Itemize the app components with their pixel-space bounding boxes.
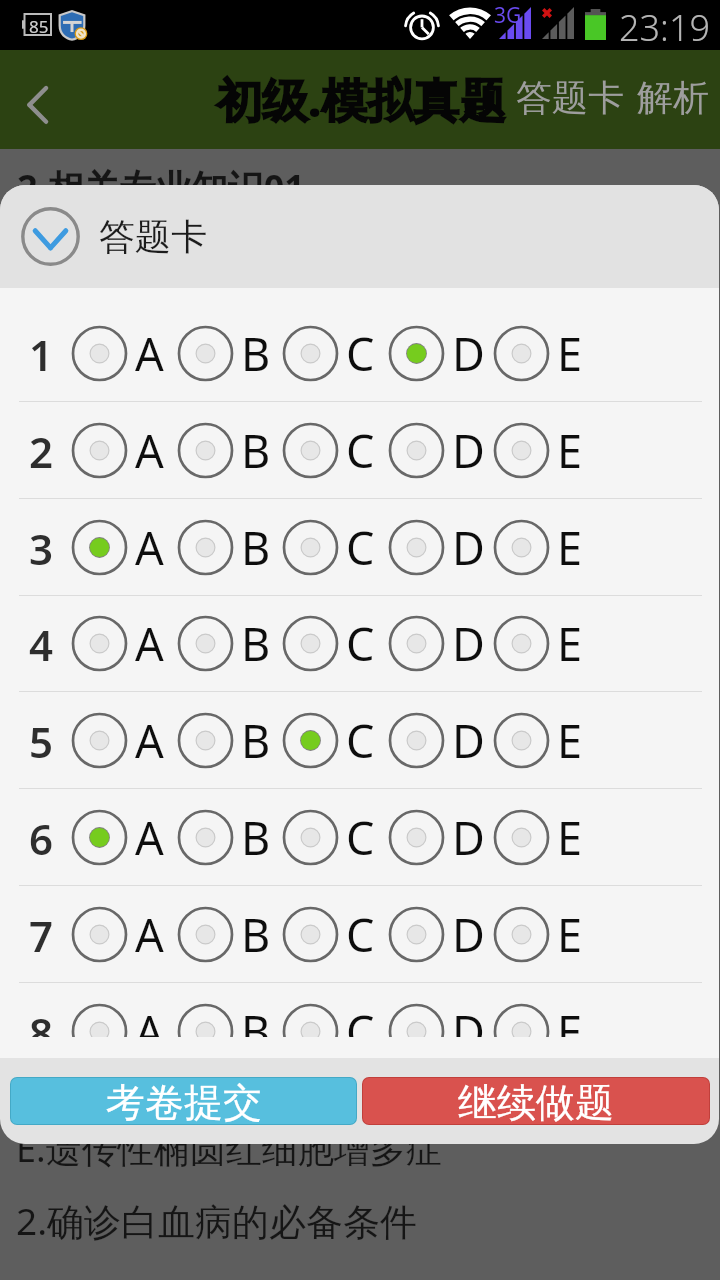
staticText: D bbox=[452, 904, 485, 965]
staticText: E bbox=[557, 807, 583, 868]
staticText: C bbox=[346, 517, 375, 578]
staticText: E.遗传性椭圆红细胞增多症 bbox=[16, 1124, 442, 1173]
staticText: A bbox=[135, 323, 164, 384]
button[interactable]: Back bbox=[8, 66, 70, 128]
staticText: C bbox=[346, 1001, 375, 1037]
staticText: 23:19 bbox=[619, 3, 711, 52]
staticText: 2.相关专业知识01 bbox=[17, 163, 305, 212]
button[interactable]: 1 bbox=[0, 305, 719, 402]
staticText: D bbox=[452, 420, 485, 481]
staticText: 2 bbox=[29, 423, 54, 480]
staticText: B bbox=[241, 710, 271, 771]
staticText: 3G bbox=[494, 1, 522, 30]
button[interactable]: 8 bbox=[0, 983, 719, 1037]
staticText: B bbox=[241, 807, 271, 868]
staticText: A bbox=[135, 420, 164, 481]
staticText: 6 bbox=[29, 810, 54, 867]
staticText: C bbox=[346, 420, 375, 481]
staticText: B bbox=[241, 1001, 271, 1037]
staticText: 5 bbox=[29, 713, 54, 770]
staticText: 3 bbox=[29, 520, 54, 577]
staticText: A bbox=[135, 904, 164, 965]
staticText: C bbox=[346, 904, 375, 965]
staticText: A bbox=[135, 710, 164, 771]
staticText: 解析 bbox=[637, 75, 709, 120]
staticText: B bbox=[241, 517, 271, 578]
staticText: B bbox=[241, 613, 271, 674]
staticText: 7 bbox=[29, 907, 54, 964]
button[interactable]: 答题卡 bbox=[0, 185, 719, 288]
button[interactable]: 考卷提交 bbox=[10, 1077, 357, 1125]
button[interactable]: 6 bbox=[0, 789, 719, 886]
staticText: 85 bbox=[29, 15, 49, 36]
staticText: A bbox=[135, 807, 164, 868]
button[interactable]: 7 bbox=[0, 886, 719, 983]
staticText: 4 bbox=[29, 616, 54, 673]
staticText: C bbox=[346, 710, 375, 771]
button[interactable]: 2 bbox=[0, 402, 719, 499]
staticText: 答题卡 bbox=[516, 75, 624, 120]
staticText: 2.确诊白血病的必备条件 bbox=[16, 1195, 418, 1246]
staticText: 初级.模拟真题 bbox=[216, 68, 506, 131]
staticText: A bbox=[135, 613, 164, 674]
button[interactable]: 继续做题 bbox=[362, 1077, 710, 1125]
staticText: A bbox=[135, 517, 164, 578]
staticText: C bbox=[346, 613, 375, 674]
staticText: B bbox=[241, 904, 271, 965]
staticText: 1 bbox=[29, 326, 54, 383]
staticText: D bbox=[452, 613, 485, 674]
staticText: D bbox=[452, 807, 485, 868]
button[interactable]: 3 bbox=[0, 499, 719, 596]
button[interactable]: 5 bbox=[0, 692, 719, 789]
staticText: E bbox=[557, 323, 583, 384]
staticText: D bbox=[452, 517, 485, 578]
button[interactable]: 解析 bbox=[629, 67, 717, 128]
staticText: D bbox=[452, 710, 485, 771]
staticText: C bbox=[346, 807, 375, 868]
staticText: C bbox=[346, 323, 375, 384]
button[interactable]: 答题卡 bbox=[508, 67, 632, 128]
staticText: 考卷提交 bbox=[106, 1078, 262, 1124]
staticText: E bbox=[557, 904, 583, 965]
staticText: E bbox=[557, 613, 583, 674]
staticText: 8 bbox=[29, 1004, 54, 1037]
staticText: 答题卡 bbox=[99, 214, 207, 259]
button[interactable]: 4 bbox=[0, 595, 719, 692]
staticText: B bbox=[241, 420, 271, 481]
staticText: D bbox=[452, 1001, 485, 1037]
staticText: D bbox=[452, 323, 485, 384]
staticText: A bbox=[135, 1001, 164, 1037]
staticText: 继续做题 bbox=[458, 1078, 614, 1124]
staticText: B bbox=[241, 323, 271, 384]
staticText: E bbox=[557, 1001, 583, 1037]
other: Alarm bbox=[407, 10, 437, 40]
staticText: E bbox=[557, 710, 583, 771]
staticText: E bbox=[557, 517, 583, 578]
staticText: E bbox=[557, 420, 583, 481]
